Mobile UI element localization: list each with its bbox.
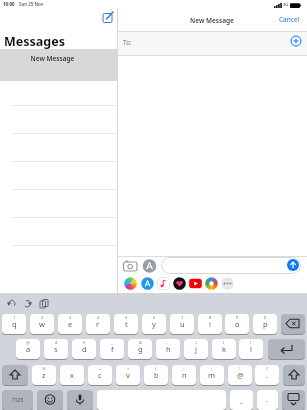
button[interactable] [161, 257, 301, 274]
button[interactable]: / [144, 365, 168, 385]
button[interactable]: 1 [2, 314, 26, 334]
staticText: New Message [117, 16, 307, 25]
staticText: a [26, 344, 31, 354]
staticText: 1 [13, 315, 16, 320]
button[interactable]: = [116, 365, 140, 385]
staticText: b [154, 370, 159, 380]
staticText: # [55, 340, 58, 345]
staticText: 2 [41, 315, 44, 320]
staticText: _ [111, 340, 113, 345]
staticText: 3 [69, 315, 72, 320]
staticText: 5 [125, 315, 128, 320]
button[interactable]: _ [100, 339, 124, 359]
staticText: .?123 [11, 397, 24, 404]
button[interactable]: + [88, 365, 112, 385]
staticText: & [139, 340, 142, 345]
button[interactable] [122, 259, 139, 273]
button[interactable] [100, 10, 116, 24]
button[interactable]: New Message [0, 49, 117, 81]
staticText: = [127, 366, 130, 371]
staticText: To: [123, 38, 132, 47]
button[interactable] [268, 339, 305, 359]
staticText: . [266, 370, 269, 380]
button[interactable]: ) [239, 339, 263, 359]
staticText: Messages [4, 33, 65, 50]
button[interactable]: - [156, 339, 180, 359]
staticText: e [68, 319, 73, 329]
staticText: g [138, 344, 143, 354]
staticText: / [155, 366, 157, 371]
staticText: - [167, 340, 169, 345]
button[interactable] [2, 365, 28, 385]
staticText: 4 [97, 315, 100, 320]
staticText: v [126, 370, 130, 380]
button[interactable]: - [257, 390, 278, 410]
staticText: 0 [264, 315, 267, 320]
button[interactable]: 0 [253, 314, 277, 334]
button[interactable]: ? [255, 365, 279, 385]
button[interactable]: : [200, 365, 224, 385]
staticText: @ [237, 370, 244, 380]
button[interactable] [282, 390, 305, 410]
staticText: - [71, 366, 73, 371]
staticText: + [195, 340, 198, 345]
button[interactable]: Cancel [279, 15, 307, 27]
staticText: - [266, 396, 269, 405]
staticText: w [39, 319, 45, 329]
button[interactable] [221, 277, 234, 290]
staticText: + [99, 366, 102, 371]
staticText: 10:00 [3, 1, 15, 7]
button[interactable] [205, 277, 218, 290]
button[interactable]: 8 [198, 314, 222, 334]
button[interactable]: & [128, 339, 152, 359]
staticText: k [222, 344, 227, 354]
button[interactable]: 2 [30, 314, 54, 334]
button[interactable] [283, 365, 305, 385]
button[interactable]: 6 [142, 314, 166, 334]
button[interactable] [124, 277, 137, 290]
staticText: l [250, 344, 252, 354]
button[interactable] [97, 390, 226, 410]
button[interactable] [290, 35, 302, 47]
button[interactable] [287, 259, 299, 271]
button[interactable] [142, 259, 157, 273]
staticText: t [125, 319, 128, 329]
button[interactable]: + [184, 339, 208, 359]
button[interactable] [173, 277, 186, 290]
button[interactable] [118, 31, 307, 55]
button[interactable] [157, 277, 170, 290]
staticText: o [235, 319, 240, 329]
button[interactable] [189, 277, 202, 290]
staticText: j [195, 344, 197, 354]
staticText: i [209, 319, 211, 329]
button[interactable]: 9 [225, 314, 249, 334]
button[interactable]: 5 [114, 314, 138, 334]
button[interactable] [281, 314, 305, 334]
staticText: Cancel [279, 15, 300, 24]
button[interactable]: .?123 [2, 390, 33, 410]
button[interactable]: 3 [58, 314, 82, 334]
button[interactable] [141, 277, 154, 290]
staticText: s [54, 344, 58, 354]
button[interactable]: - [60, 365, 84, 385]
staticText: 9 [236, 315, 239, 320]
staticText: r [96, 319, 100, 329]
button[interactable] [67, 390, 93, 410]
button[interactable] [37, 390, 63, 410]
button[interactable]: ! [228, 365, 252, 385]
staticText: New Message [0, 54, 105, 63]
staticText: ( [223, 340, 225, 345]
button[interactable]: 7 [170, 314, 194, 334]
button[interactable]: € [72, 339, 96, 359]
button[interactable]: _ [230, 390, 253, 410]
button[interactable]: ; [172, 365, 196, 385]
button[interactable]: % [32, 365, 56, 385]
button[interactable]: 4 [86, 314, 110, 334]
button[interactable]: ( [212, 339, 236, 359]
button[interactable]: # [44, 339, 68, 359]
staticText: f [111, 344, 114, 354]
staticText: 3G [283, 2, 289, 7]
staticText: 7 [181, 315, 184, 320]
staticText: ) [250, 340, 252, 345]
button[interactable]: @ [16, 339, 40, 359]
